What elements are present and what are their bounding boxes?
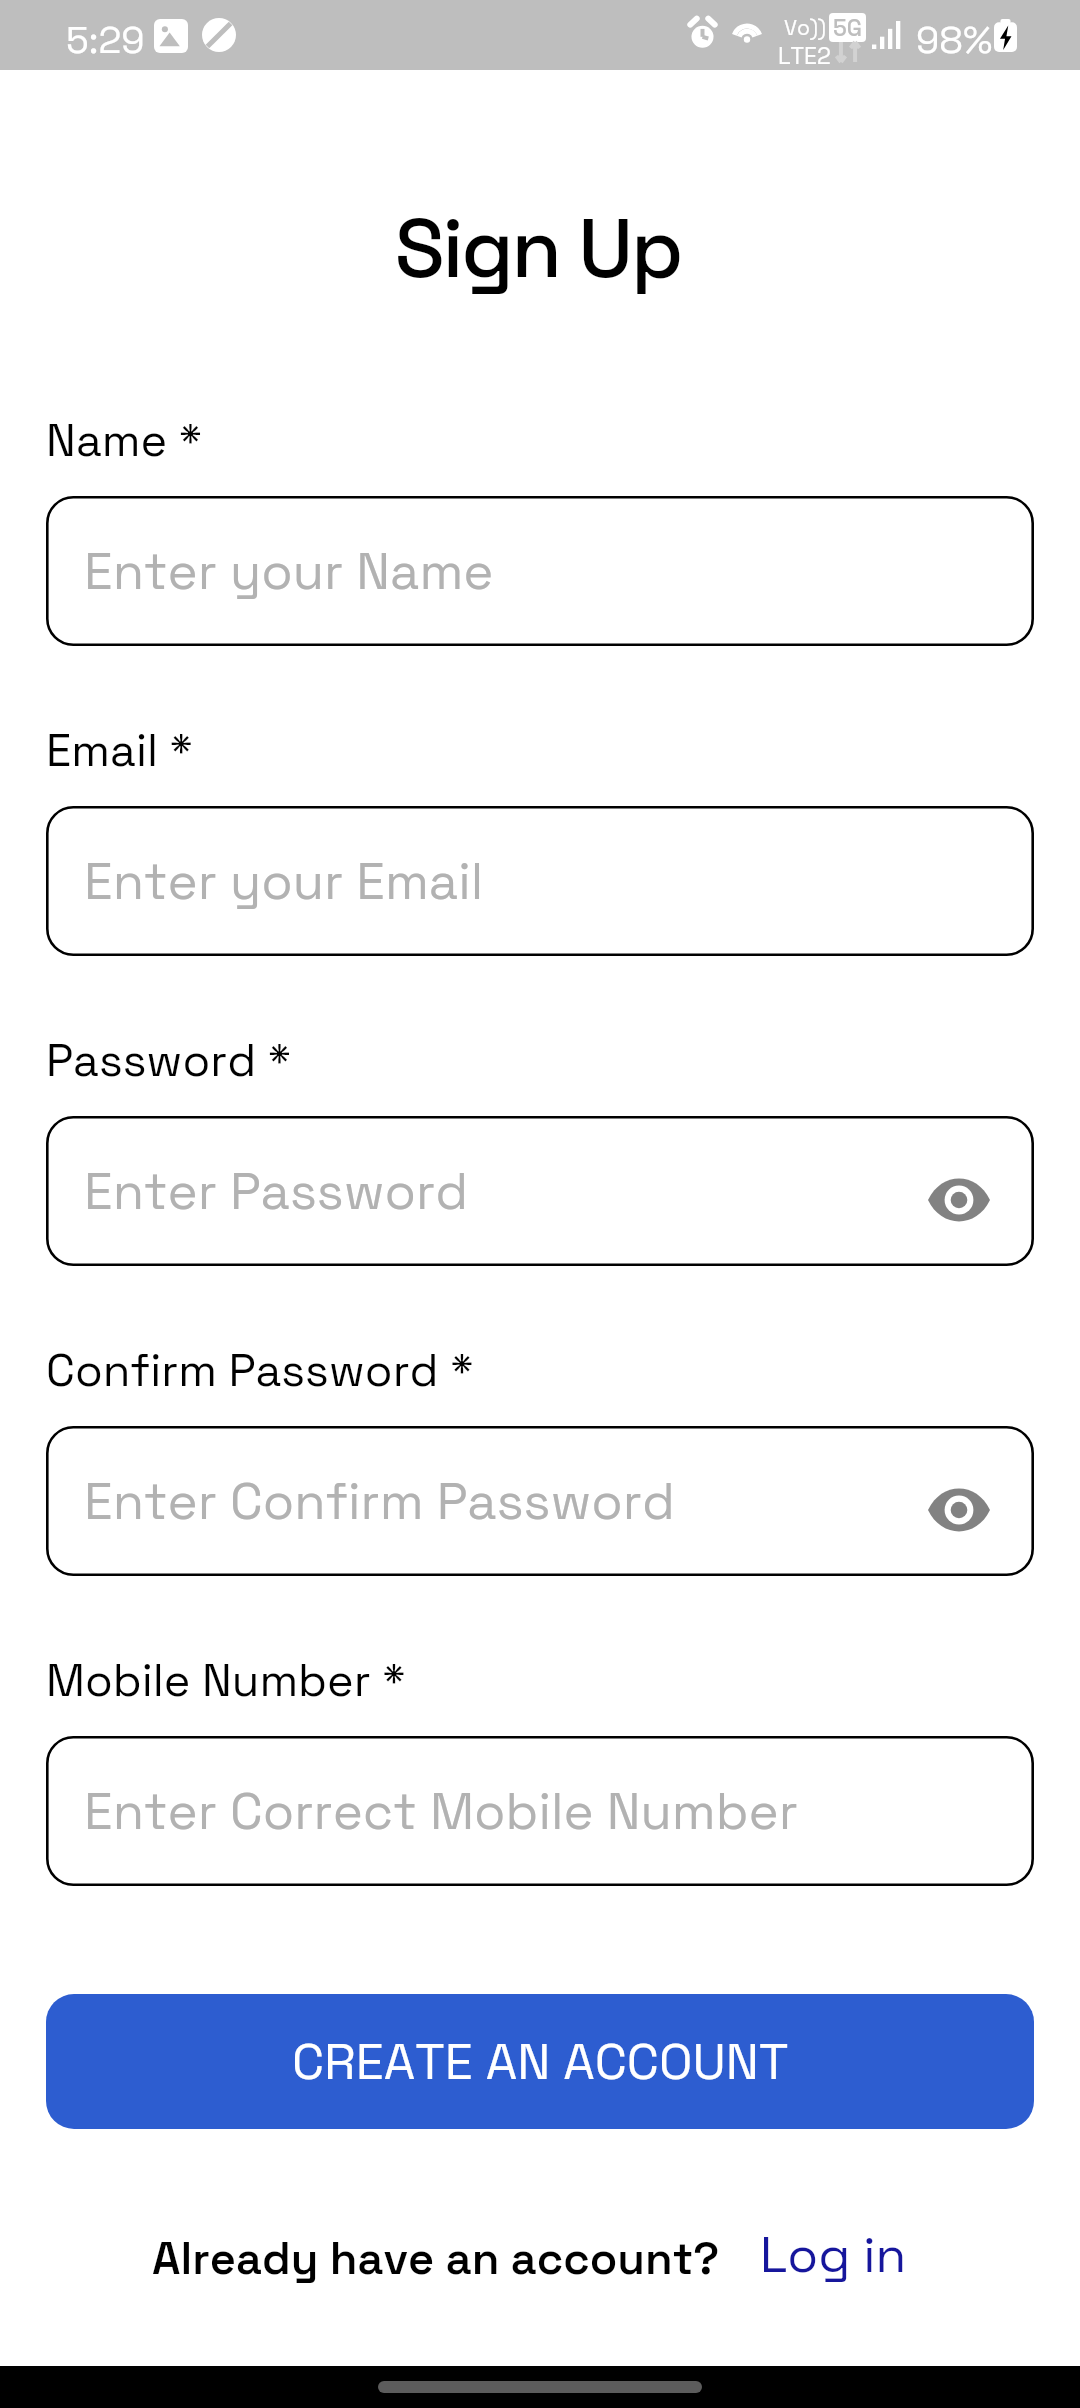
staticText: Enter Confirm Password [84, 1469, 675, 1534]
staticText: Already have an account? [152, 2230, 720, 2287]
staticText: Enter your Email [84, 849, 484, 914]
button[interactable]: Enter your Email [46, 806, 1034, 956]
staticText: Mobile Number * [46, 1652, 406, 1709]
staticText: Log in [760, 2223, 907, 2287]
staticText: Enter Password [84, 1159, 469, 1224]
button[interactable]: Show password [923, 1474, 995, 1546]
staticText: Sign Up [0, 196, 1078, 301]
button[interactable]: Enter Correct Mobile Number [46, 1736, 1034, 1886]
button[interactable]: Enter Password [46, 1116, 1034, 1266]
staticText: Enter Correct Mobile Number [84, 1779, 798, 1844]
staticText: Email * [46, 722, 193, 779]
staticText: Password * [46, 1032, 292, 1089]
staticText: 5:29 [66, 16, 145, 64]
button[interactable]: CREATE AN ACCOUNT [46, 1994, 1034, 2129]
button[interactable]: Show password [923, 1164, 995, 1236]
staticText: Confirm Password * [46, 1342, 474, 1399]
staticText: 98% [916, 16, 993, 64]
button[interactable]: Enter Confirm Password [46, 1426, 1034, 1576]
staticText: LTE2 [778, 41, 831, 70]
staticText: Enter your Name [84, 539, 494, 604]
button[interactable]: Log in [760, 2223, 907, 2287]
staticText: Name * [46, 412, 203, 469]
staticText: CREATE AN ACCOUNT [292, 2030, 789, 2094]
staticText: Vo)) [784, 14, 826, 41]
button[interactable]: Enter your Name [46, 496, 1034, 646]
staticText: 5G [833, 13, 862, 42]
